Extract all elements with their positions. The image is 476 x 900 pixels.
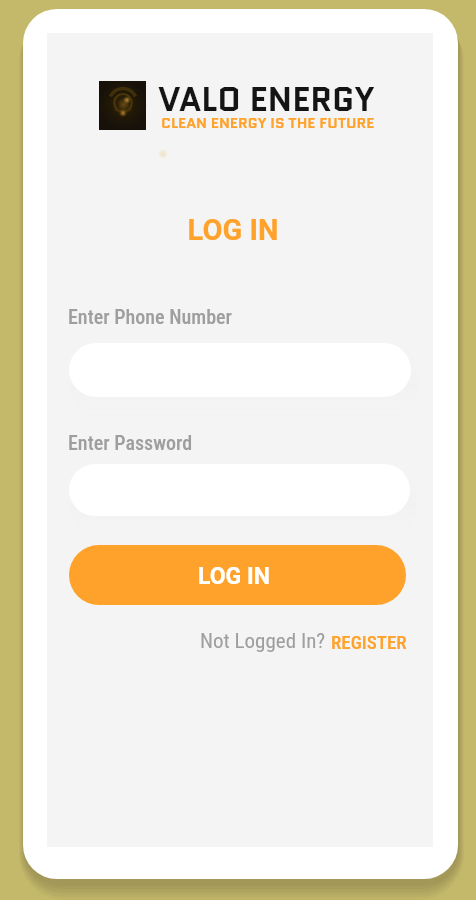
- button[interactable]: LOG IN: [69, 545, 406, 605]
- button[interactable]: REGISTER: [331, 631, 407, 653]
- staticText: LOG IN: [40, 213, 426, 247]
- staticText: VALO ENERGY: [158, 76, 375, 123]
- staticText: CLEAN ENERGY IS THE FUTURE: [161, 112, 375, 133]
- staticText: Enter Password: [68, 431, 193, 454]
- staticText: Enter Phone Number: [68, 305, 232, 328]
- staticText: Not Logged In?: [200, 629, 331, 654]
- staticText: LOG IN: [198, 563, 270, 590]
- other: Valo Energy logo: [99, 81, 146, 130]
